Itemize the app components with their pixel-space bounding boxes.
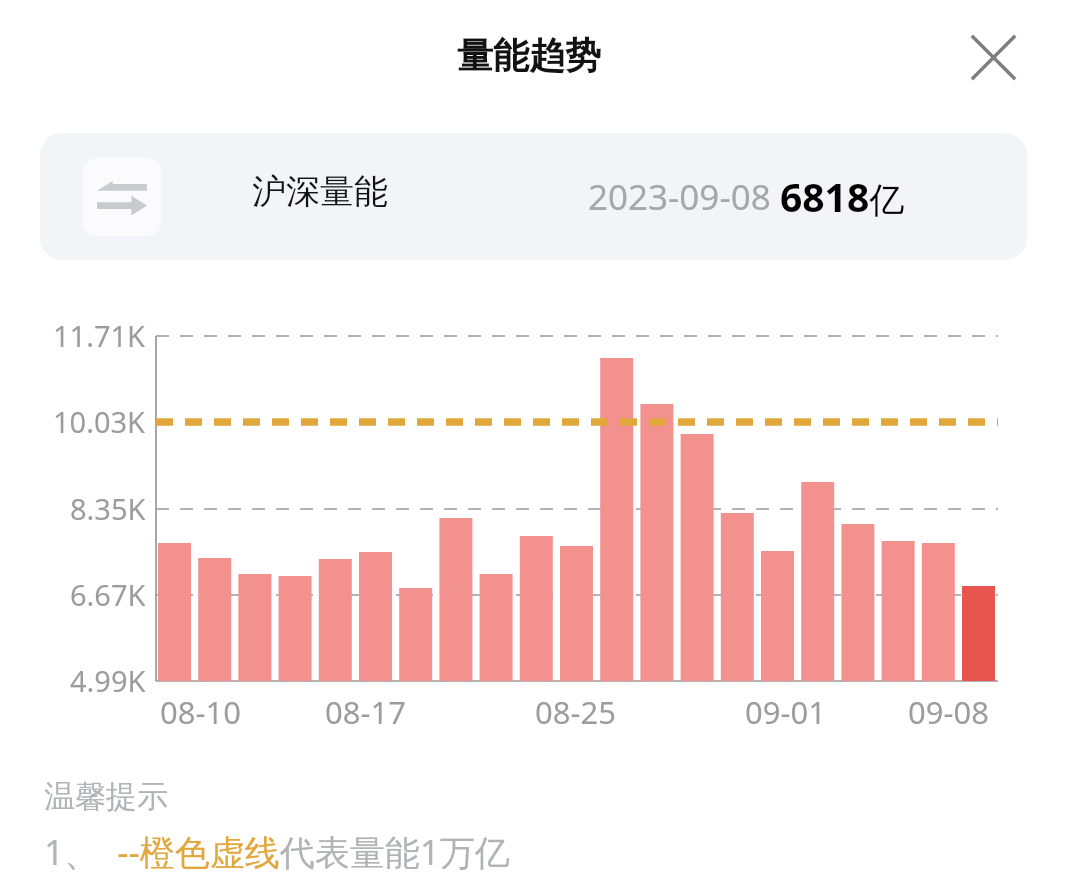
staticText: 08-25 (535, 691, 616, 733)
button[interactable]: Close (961, 25, 1025, 89)
staticText: 09-08 (908, 691, 989, 733)
staticText: 08-17 (325, 691, 406, 733)
staticText: 沪深量能 (252, 170, 388, 213)
staticText: 8.35K (70, 489, 146, 528)
button[interactable]: 沪深量能 (40, 133, 1027, 260)
staticText: 温馨提示 (44, 777, 168, 816)
staticText: 11.71K (53, 316, 146, 355)
staticText: 09-01 (745, 691, 826, 733)
staticText: 量能趋势 (457, 33, 601, 78)
staticText: 6818亿 (780, 170, 905, 223)
staticText: 6.67K (70, 575, 146, 614)
staticText: 4.99K (70, 661, 146, 700)
staticText: 10.03K (53, 402, 146, 441)
staticText: 1、 --橙色虚线代表量能1万亿 (44, 828, 510, 876)
staticText: 2023-09-08 (588, 173, 771, 221)
staticText: 08-10 (160, 691, 241, 733)
